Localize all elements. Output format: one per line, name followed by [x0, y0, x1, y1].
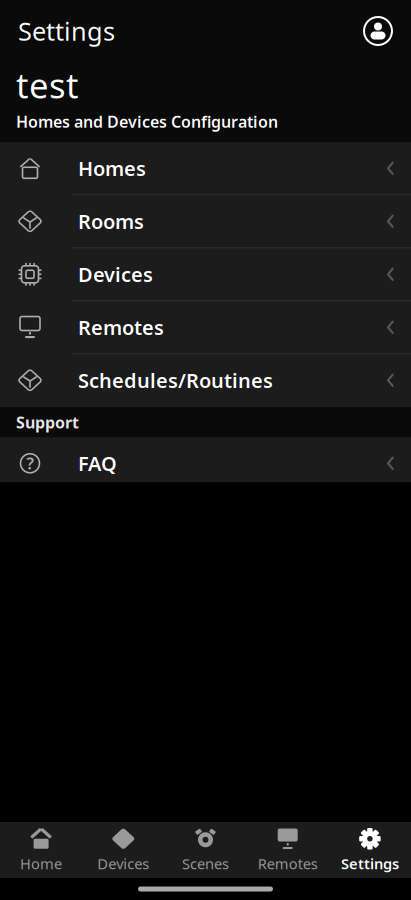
button[interactable]: ?	[0, 437, 411, 490]
button[interactable]: Schedules/Routines	[0, 354, 411, 407]
button[interactable]: Homes	[0, 142, 411, 195]
staticText: Rooms	[78, 208, 144, 235]
staticText: Remotes	[78, 314, 164, 341]
staticText: Homes and Devices Configuration	[16, 111, 278, 132]
button[interactable]: Scenes	[164, 822, 247, 878]
button[interactable]: Devices	[82, 822, 164, 878]
button[interactable]: Remotes	[247, 822, 329, 878]
staticText: test	[16, 62, 79, 108]
button[interactable]: Settings	[329, 822, 411, 878]
staticText: Devices	[78, 261, 153, 288]
button[interactable]: Rooms	[0, 195, 411, 248]
staticText: FAQ	[78, 450, 117, 477]
staticText: Settings	[18, 14, 115, 48]
staticText: Scenes	[182, 854, 229, 873]
button[interactable]: Home	[0, 822, 82, 878]
button[interactable]: Devices	[0, 248, 411, 301]
staticText: Remotes	[258, 854, 318, 873]
staticText: Schedules/Routines	[78, 367, 273, 394]
staticText: Support	[16, 412, 79, 433]
staticText: Home	[20, 854, 62, 873]
staticText: ?	[26, 453, 33, 474]
button[interactable]: Remotes	[0, 301, 411, 354]
staticText: Homes	[78, 155, 146, 182]
staticText: Devices	[97, 854, 149, 873]
staticText: Settings	[341, 854, 399, 873]
button[interactable]: Account	[363, 16, 393, 46]
